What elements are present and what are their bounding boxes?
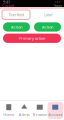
staticText: Home [3, 112, 14, 117]
staticText: Text field [8, 12, 23, 17]
button[interactable]: Home [1, 102, 16, 119]
staticText: Action [11, 24, 22, 30]
button[interactable]: Alerts [16, 102, 32, 119]
staticText: Alerts [19, 112, 30, 117]
staticText: Primary action [19, 36, 45, 41]
staticText: 9:41 [3, 0, 10, 5]
staticText: ••• [55, 0, 61, 5]
staticText: Label [43, 12, 52, 17]
button[interactable]: Action [3, 22, 30, 32]
staticText: Browse [33, 112, 47, 117]
button[interactable]: Browse [32, 102, 47, 119]
staticText: Action [42, 24, 53, 30]
button[interactable]: Save [54, 3, 62, 8]
button[interactable]: Action [34, 22, 61, 32]
staticText: Account [48, 112, 62, 117]
staticText: Cancel [2, 3, 14, 8]
button[interactable]: Cancel [2, 3, 14, 8]
staticText: Save [54, 3, 62, 8]
button[interactable]: Account [47, 102, 63, 119]
button[interactable]: Primary action [3, 34, 61, 43]
